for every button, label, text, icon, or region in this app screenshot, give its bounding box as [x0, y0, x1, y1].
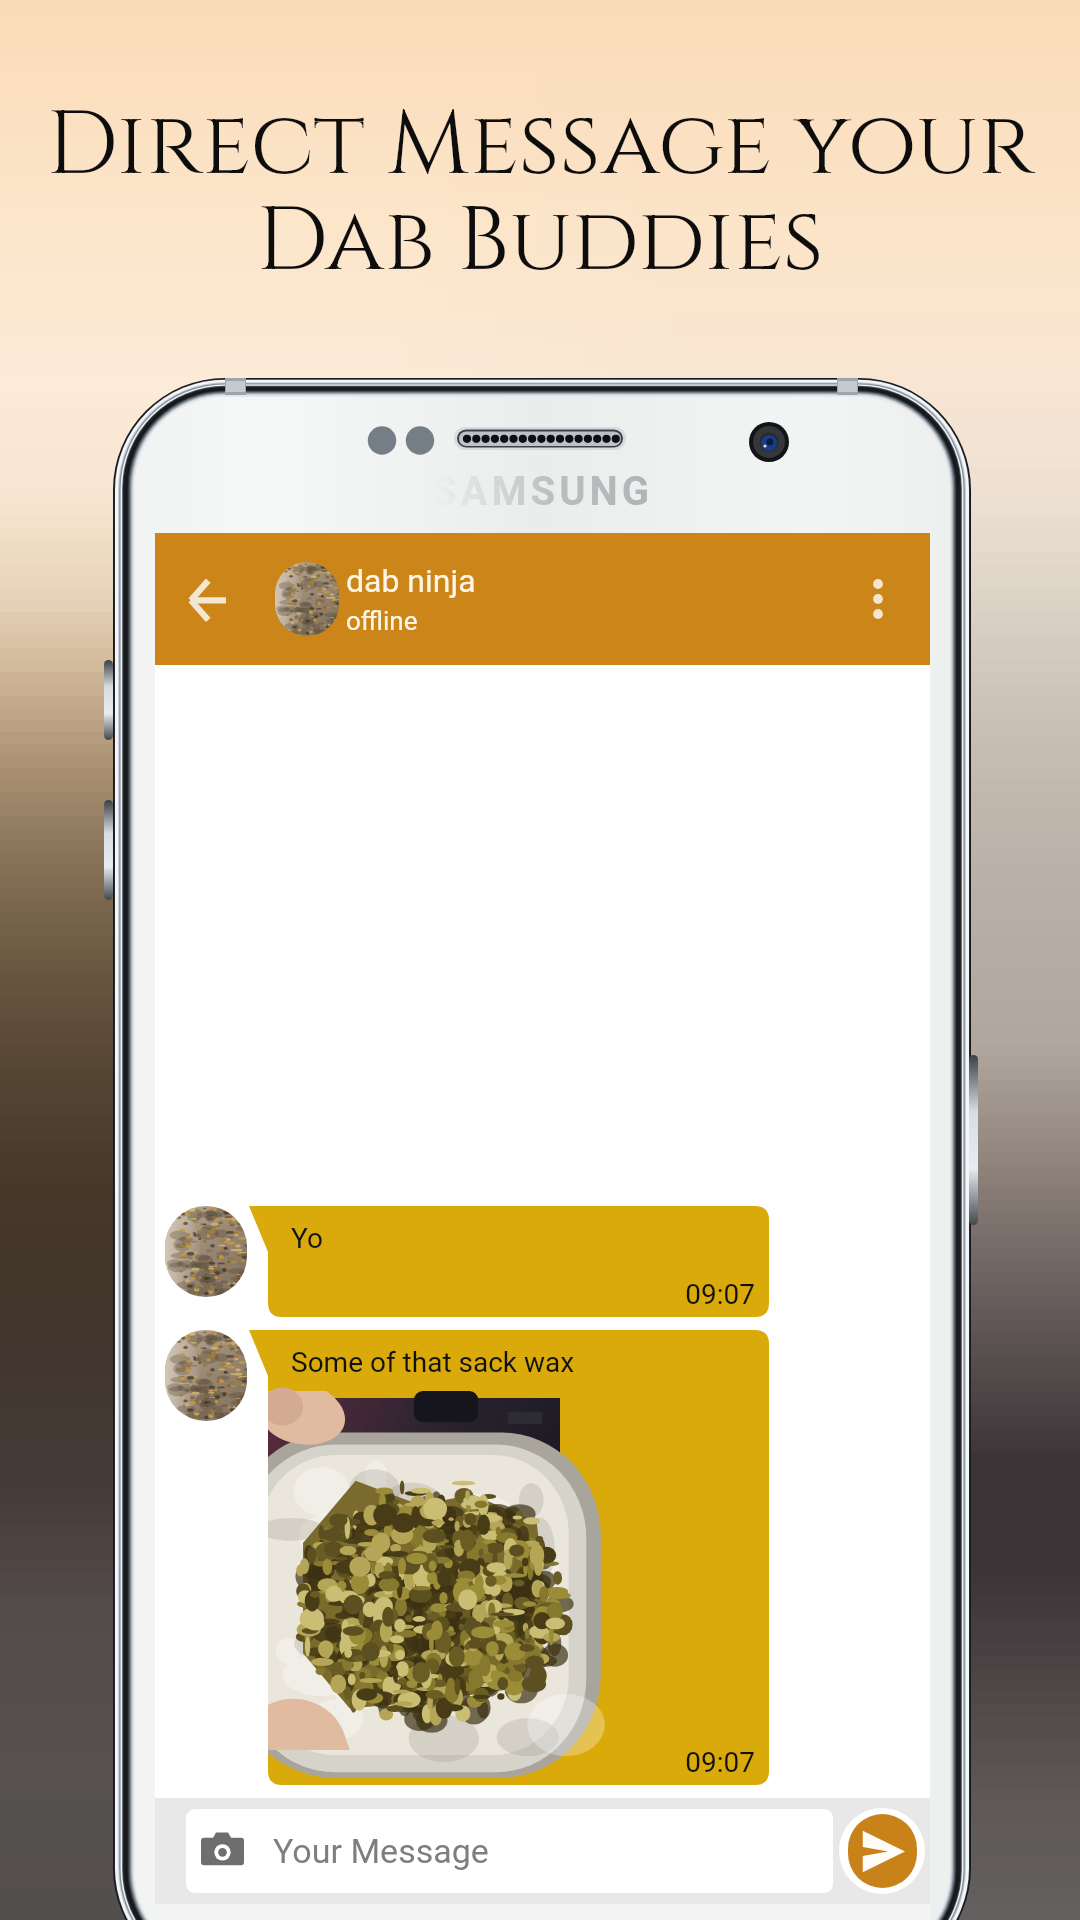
button[interactable]: More options — [826, 533, 930, 665]
button[interactable]: Send — [839, 1808, 925, 1894]
button[interactable]: Yo — [249, 1206, 769, 1317]
button[interactable]: Back — [155, 533, 260, 665]
staticText: SAMSUNG — [432, 468, 653, 515]
button[interactable]: Your Message — [186, 1809, 833, 1893]
button[interactable]: Some of that sack wax — [249, 1330, 769, 1785]
staticText: Your Message — [273, 1831, 489, 1871]
button[interactable]: Back — [155, 533, 930, 665]
staticText: Yo — [291, 1222, 323, 1255]
staticText: 09:07 — [268, 1746, 755, 1779]
staticText: dab ninja — [346, 562, 476, 600]
staticText: Some of that sack wax — [291, 1346, 575, 1379]
staticText: offline — [346, 606, 418, 636]
staticText: Direct Message your Dab Buddies — [46, 86, 1034, 302]
staticText: 09:07 — [268, 1278, 755, 1311]
